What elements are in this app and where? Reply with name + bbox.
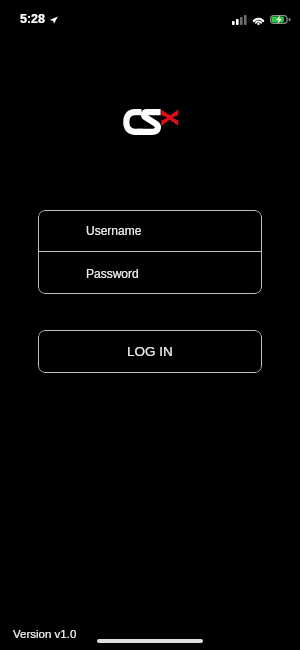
button[interactable]: Username [38, 210, 262, 251]
other: CSX logo [123, 108, 180, 138]
staticText: LOG IN [127, 344, 173, 359]
button[interactable]: LOG IN [38, 330, 262, 373]
staticText: 5:28 [20, 12, 46, 26]
staticText: Username [86, 224, 142, 237]
button[interactable]: Password [38, 252, 262, 294]
staticText: Version v1.0 [13, 628, 77, 641]
staticText: Password [86, 267, 139, 280]
